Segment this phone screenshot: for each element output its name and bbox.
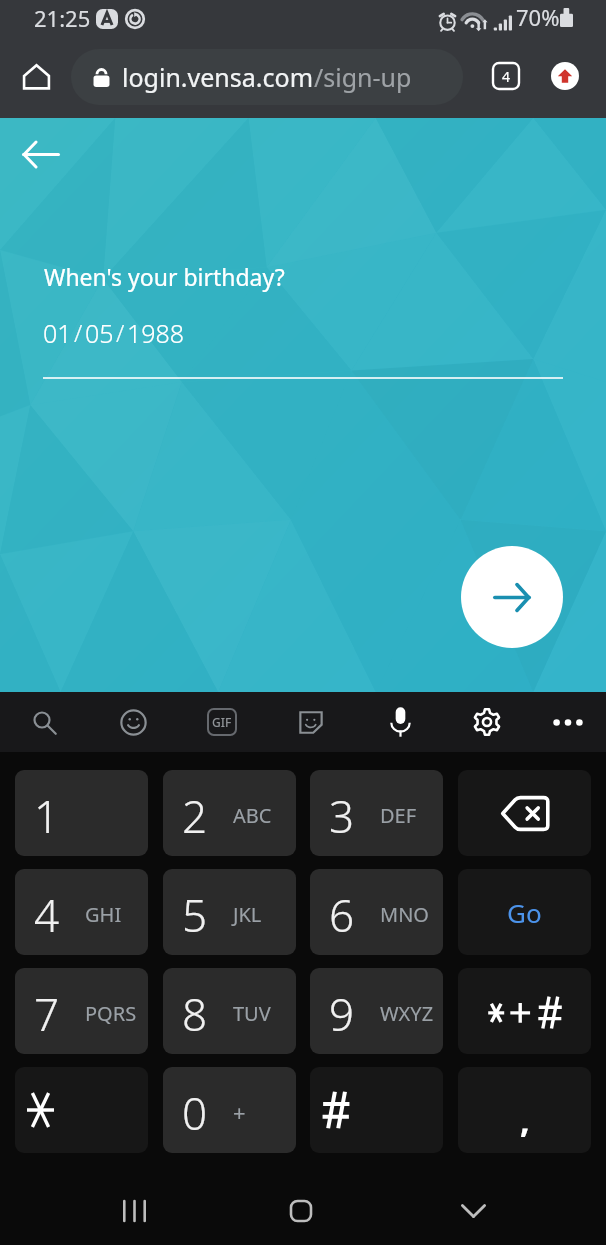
staticText: 0 — [182, 1083, 208, 1143]
staticText: 3 — [329, 786, 355, 846]
staticText: 1 — [34, 786, 60, 846]
button[interactable]: 0 — [163, 1067, 296, 1153]
button[interactable]: 3 — [310, 770, 443, 856]
staticText: login.vensa.com — [122, 60, 314, 94]
button[interactable]: Home — [271, 1181, 331, 1241]
staticText: GHI — [85, 901, 122, 928]
staticText: TUV — [233, 1000, 271, 1027]
button[interactable]: Voice input — [370, 692, 430, 752]
staticText: , — [520, 1097, 530, 1143]
button[interactable]: Downloads — [542, 53, 588, 99]
button[interactable]: Asterisk — [15, 1067, 148, 1153]
staticText: 8 — [182, 984, 208, 1044]
button[interactable]: 8 — [163, 968, 296, 1054]
button[interactable] — [458, 968, 591, 1054]
staticText: 21:25 — [34, 3, 91, 33]
staticText: 7 — [34, 984, 60, 1044]
button[interactable]: Tabs — [483, 53, 529, 99]
staticText: / — [74, 316, 83, 349]
staticText: DEF — [380, 802, 417, 829]
button[interactable]: 4 — [15, 869, 148, 955]
button[interactable]: 9 — [310, 968, 443, 1054]
button[interactable]: Back — [9, 122, 73, 186]
button[interactable]: GIF — [192, 692, 252, 752]
staticText: 4 — [34, 885, 60, 945]
staticText: 01 — [43, 316, 72, 350]
staticText: ABC — [233, 802, 272, 829]
button[interactable]: Recents — [104, 1181, 164, 1241]
staticText: 9 — [329, 984, 355, 1044]
staticText: 5 — [182, 885, 208, 945]
button[interactable]: 7 — [15, 968, 148, 1054]
staticText: MNO — [380, 901, 429, 928]
button[interactable]: Settings — [457, 692, 517, 752]
staticText: 1988 — [127, 316, 185, 350]
button[interactable]: Next — [461, 546, 563, 648]
staticText: PQRS — [85, 1000, 137, 1027]
button[interactable]: Backspace — [458, 770, 591, 856]
staticText: 4 — [502, 67, 511, 86]
button[interactable]: Home — [8, 48, 64, 104]
staticText: + — [233, 1097, 246, 1127]
staticText: WXYZ — [380, 1000, 434, 1027]
button[interactable]: Stickers — [281, 692, 341, 752]
staticText: / — [116, 316, 125, 349]
staticText: 70% — [516, 2, 560, 32]
staticText: /sign-up — [314, 60, 412, 94]
staticText: Go — [507, 895, 542, 930]
staticText: GIF — [212, 714, 232, 730]
staticText: JKL — [233, 901, 262, 928]
button[interactable]: login.vensa.com — [71, 49, 463, 105]
staticText: 2 — [182, 786, 208, 846]
button[interactable]: Hide keyboard — [443, 1181, 503, 1241]
button[interactable]: , — [458, 1067, 591, 1153]
button[interactable]: 1 — [15, 770, 148, 856]
button[interactable]: 6 — [310, 869, 443, 955]
button[interactable]: Hash — [310, 1067, 443, 1153]
button[interactable]: 2 — [163, 770, 296, 856]
button[interactable]: Emoji — [103, 692, 163, 752]
button[interactable]: More options — [538, 692, 598, 752]
button[interactable]: Search — [14, 692, 74, 752]
staticText: 6 — [329, 885, 355, 945]
button[interactable]: 5 — [163, 869, 296, 955]
button[interactable]: Go — [458, 869, 591, 955]
staticText: 05 — [85, 316, 114, 350]
staticText: When's your birthday? — [44, 261, 285, 292]
